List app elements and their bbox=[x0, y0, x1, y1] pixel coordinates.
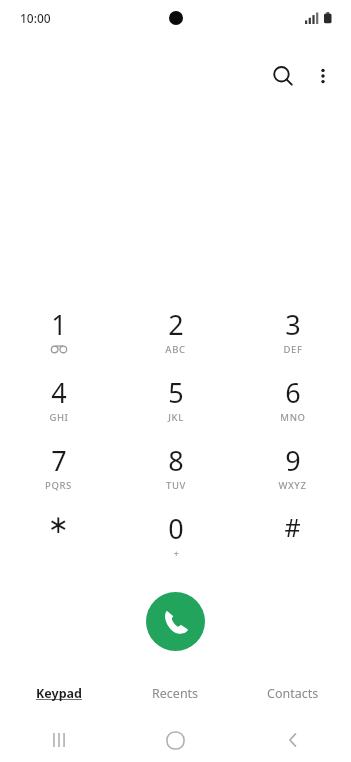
staticText: 0 bbox=[168, 510, 184, 547]
button[interactable]: 5 bbox=[117, 374, 234, 429]
button[interactable]: 9 bbox=[234, 442, 351, 497]
staticText: PQRS bbox=[45, 479, 72, 492]
button[interactable]: Back bbox=[234, 718, 351, 762]
button[interactable]: 0 bbox=[117, 510, 234, 565]
staticText: 7 bbox=[51, 442, 67, 479]
button[interactable]: Contacts bbox=[234, 676, 351, 710]
staticText: MNO bbox=[280, 411, 306, 424]
button[interactable]: Keypad bbox=[0, 676, 117, 710]
button[interactable]: 3 bbox=[234, 306, 351, 361]
staticText: 10:00 bbox=[20, 10, 51, 26]
button[interactable]: Call bbox=[146, 592, 205, 651]
button[interactable]: Home bbox=[117, 718, 234, 762]
button[interactable]: Search bbox=[263, 56, 303, 96]
button[interactable]: Recent apps bbox=[0, 718, 117, 762]
staticText: Keypad bbox=[36, 685, 82, 702]
staticText: GHI bbox=[49, 411, 69, 424]
button[interactable]: 2 bbox=[117, 306, 234, 361]
staticText: 5 bbox=[168, 374, 184, 411]
staticText: Recents bbox=[152, 685, 199, 702]
staticText: ABC bbox=[165, 343, 186, 356]
button[interactable]: 7 bbox=[0, 442, 117, 497]
staticText: Contacts bbox=[267, 685, 319, 702]
button[interactable]: More options bbox=[303, 56, 343, 96]
button[interactable]: 1 bbox=[0, 306, 117, 361]
button[interactable]: 4 bbox=[0, 374, 117, 429]
staticText: 1 bbox=[51, 306, 67, 343]
button[interactable]: 6 bbox=[234, 374, 351, 429]
staticText: JKL bbox=[168, 411, 184, 424]
staticText: 2 bbox=[168, 306, 184, 343]
staticText: TUV bbox=[166, 479, 186, 492]
button[interactable]: ∗ bbox=[0, 510, 117, 565]
staticText: 8 bbox=[168, 442, 184, 479]
staticText: DEF bbox=[283, 343, 303, 356]
staticText: ∗ bbox=[48, 510, 69, 539]
button[interactable]: Recents bbox=[117, 676, 234, 710]
staticText: + bbox=[173, 547, 180, 560]
staticText: WXYZ bbox=[278, 479, 307, 492]
staticText: 9 bbox=[285, 442, 301, 479]
staticText: 4 bbox=[51, 374, 67, 411]
staticText: 3 bbox=[285, 306, 301, 343]
staticText: # bbox=[284, 510, 301, 544]
button[interactable]: 8 bbox=[117, 442, 234, 497]
staticText: 6 bbox=[285, 374, 301, 411]
button[interactable]: # bbox=[234, 510, 351, 565]
